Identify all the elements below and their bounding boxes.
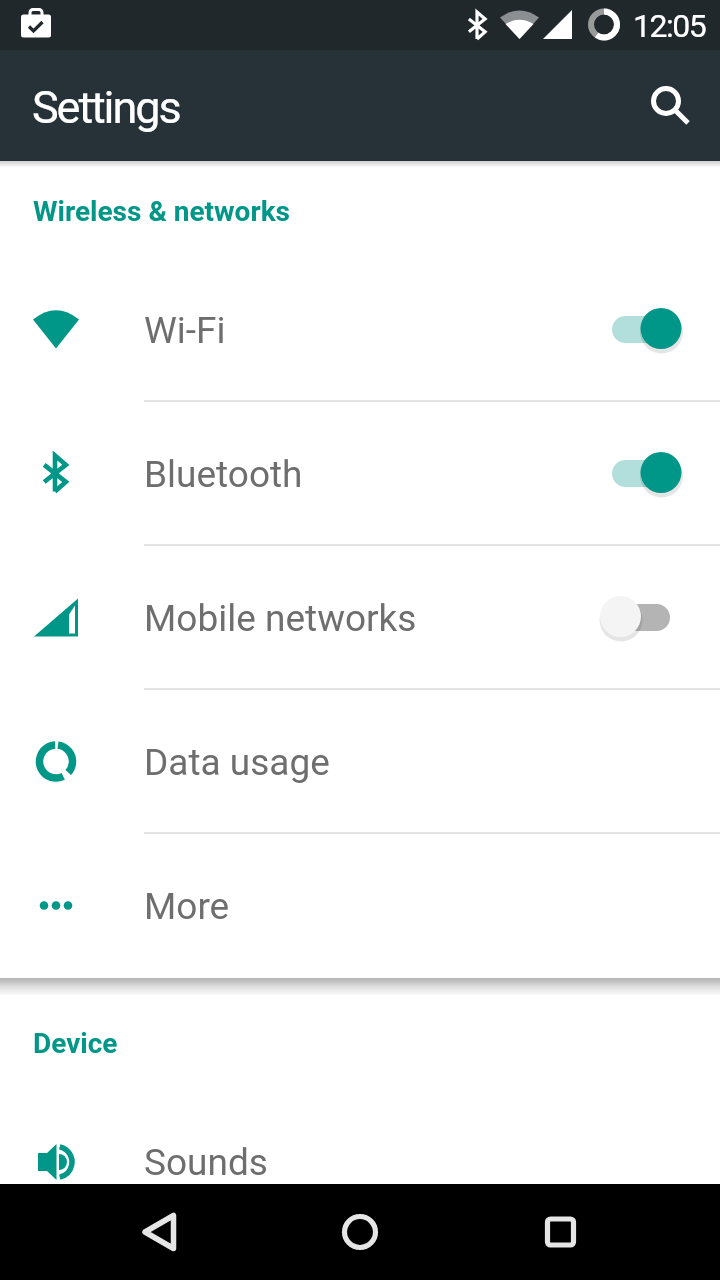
staticText: 12:05 — [633, 7, 706, 45]
button[interactable]: Data usage — [0, 690, 720, 834]
staticText: Device — [33, 1027, 118, 1060]
staticText: Wi-Fi — [144, 309, 226, 352]
staticText: Wireless & networks — [33, 195, 291, 228]
button[interactable]: Wi-Fi — [0, 258, 720, 402]
button[interactable]: Recents — [480, 1184, 720, 1280]
staticText: Data usage — [144, 741, 330, 784]
button[interactable]: Bluetooth — [0, 402, 720, 546]
button[interactable]: Sounds — [0, 1090, 720, 1234]
button[interactable]: Back — [0, 1184, 240, 1280]
staticText: More — [144, 885, 230, 928]
button[interactable]: Settings — [0, 50, 560, 161]
button[interactable]: Mobile networks — [0, 546, 720, 690]
button[interactable]: More — [0, 834, 720, 978]
staticText: Sounds — [144, 1141, 268, 1184]
button[interactable]: Home — [240, 1184, 480, 1280]
staticText: Bluetooth — [144, 453, 303, 496]
button[interactable]: Search — [618, 58, 714, 154]
staticText: Settings — [32, 81, 180, 134]
staticText: Mobile networks — [144, 597, 417, 640]
